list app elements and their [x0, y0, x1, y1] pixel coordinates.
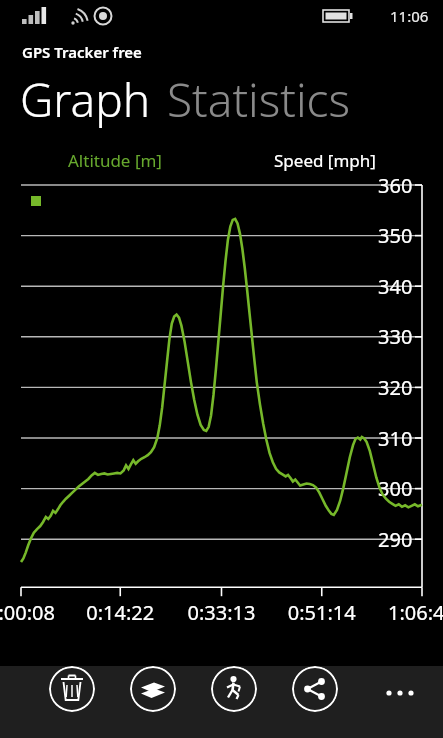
button[interactable]: Activity type	[211, 666, 257, 712]
staticText: Graph	[20, 68, 151, 131]
button[interactable]: Statistics	[167, 68, 350, 131]
staticText: 11:06	[390, 6, 429, 26]
button[interactable]: Graph	[20, 68, 151, 131]
staticText: Statistics	[167, 68, 350, 131]
button[interactable]: Delete	[49, 666, 95, 712]
button[interactable]: Share	[292, 666, 338, 712]
button[interactable]: More options	[383, 680, 417, 714]
button[interactable]: Layers	[130, 666, 176, 712]
staticText: GPS Tracker free	[22, 42, 142, 62]
